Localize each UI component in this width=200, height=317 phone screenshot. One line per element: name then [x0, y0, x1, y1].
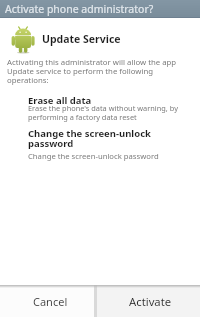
- staticText: Activate: [129, 294, 172, 309]
- staticText: Erase the phone's data without warning, …: [28, 103, 178, 122]
- staticText: Erase all data: [28, 94, 92, 107]
- button[interactable]: Cancel: [0, 285, 94, 317]
- staticText: Update Service: [42, 32, 121, 46]
- staticText: Activate phone administrator?: [5, 2, 154, 16]
- staticText: Change the screen-unlock password: [28, 127, 151, 150]
- staticText: Activating this administrator will allow…: [7, 57, 177, 86]
- staticText: Change the screen-unlock password: [28, 151, 159, 161]
- button[interactable]: Activate: [97, 285, 200, 317]
- staticText: Cancel: [33, 294, 68, 309]
